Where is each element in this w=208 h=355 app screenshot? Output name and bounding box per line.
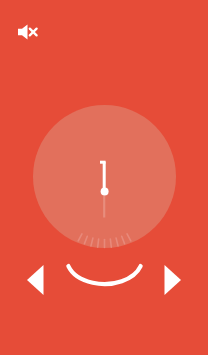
button[interactable]: Mute sound bbox=[11, 17, 45, 47]
button[interactable]: Start metronome bbox=[33, 105, 176, 248]
button[interactable]: Previous bbox=[18, 258, 54, 302]
button[interactable]: Next bbox=[154, 258, 190, 302]
